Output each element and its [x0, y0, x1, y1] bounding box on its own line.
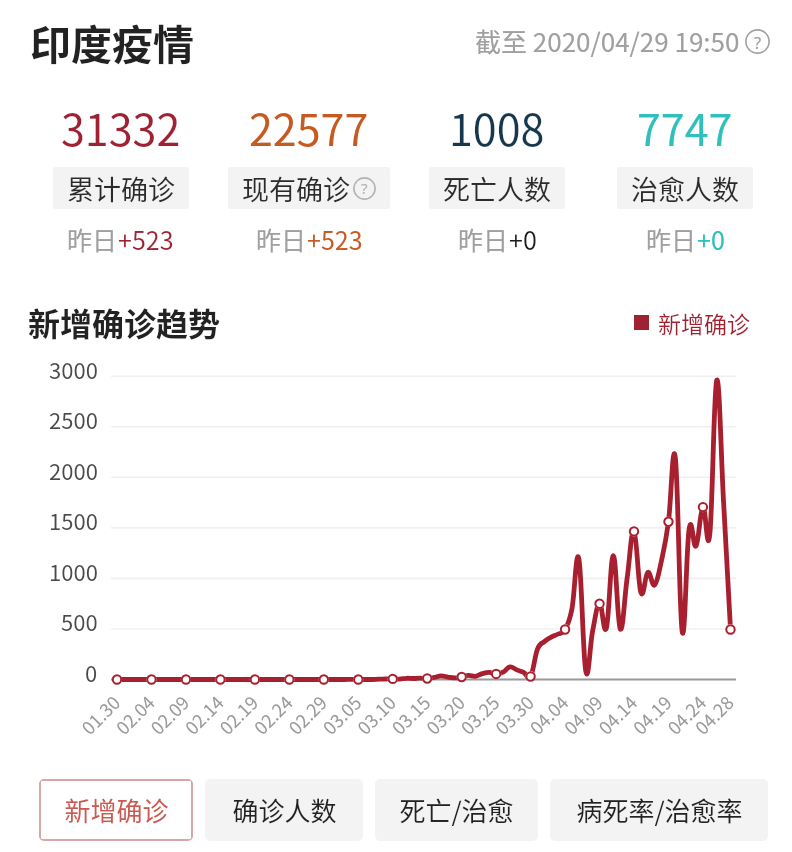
- button[interactable]: 数据说明: [475, 22, 770, 60]
- staticText: 病死率/治愈率: [576, 791, 743, 829]
- staticText: 22577: [249, 96, 369, 158]
- staticText: ?: [361, 178, 368, 199]
- staticText: 新增确诊趋势: [28, 299, 221, 345]
- staticText: 昨日: [256, 221, 307, 257]
- staticText: 1008: [449, 96, 545, 158]
- button[interactable]: 确诊人数: [205, 779, 363, 841]
- button[interactable]: 病死率/治愈率: [550, 779, 768, 841]
- button[interactable]: 治愈人数: [617, 167, 753, 209]
- staticText: ?: [754, 31, 762, 53]
- staticText: 确诊人数: [232, 791, 337, 829]
- button[interactable]: 现有确诊: [228, 167, 390, 209]
- staticText: +0: [697, 221, 725, 257]
- staticText: 现有确诊: [242, 169, 350, 208]
- staticText: 新增确诊: [64, 791, 169, 829]
- staticText: 印度疫情: [30, 12, 194, 71]
- staticText: +523: [118, 221, 174, 257]
- staticText: 新增确诊: [658, 306, 750, 339]
- staticText: +523: [307, 221, 363, 257]
- staticText: 昨日: [458, 221, 509, 257]
- button[interactable]: 死亡人数: [429, 167, 565, 209]
- staticText: +0: [509, 221, 537, 257]
- staticText: 累计确诊: [67, 169, 175, 208]
- staticText: 死亡人数: [443, 169, 551, 208]
- staticText: 死亡/治愈: [399, 791, 514, 829]
- staticText: 截至 2020/04/29 19:50: [475, 22, 740, 60]
- button[interactable]: 累计确诊: [53, 167, 189, 209]
- staticText: 昨日: [67, 221, 118, 257]
- button[interactable]: 死亡/治愈: [375, 779, 538, 841]
- button[interactable]: 新增确诊: [39, 779, 193, 841]
- staticText: 昨日: [646, 221, 697, 257]
- staticText: 治愈人数: [631, 169, 739, 208]
- staticText: 31332: [61, 96, 181, 158]
- staticText: 7747: [637, 96, 733, 158]
